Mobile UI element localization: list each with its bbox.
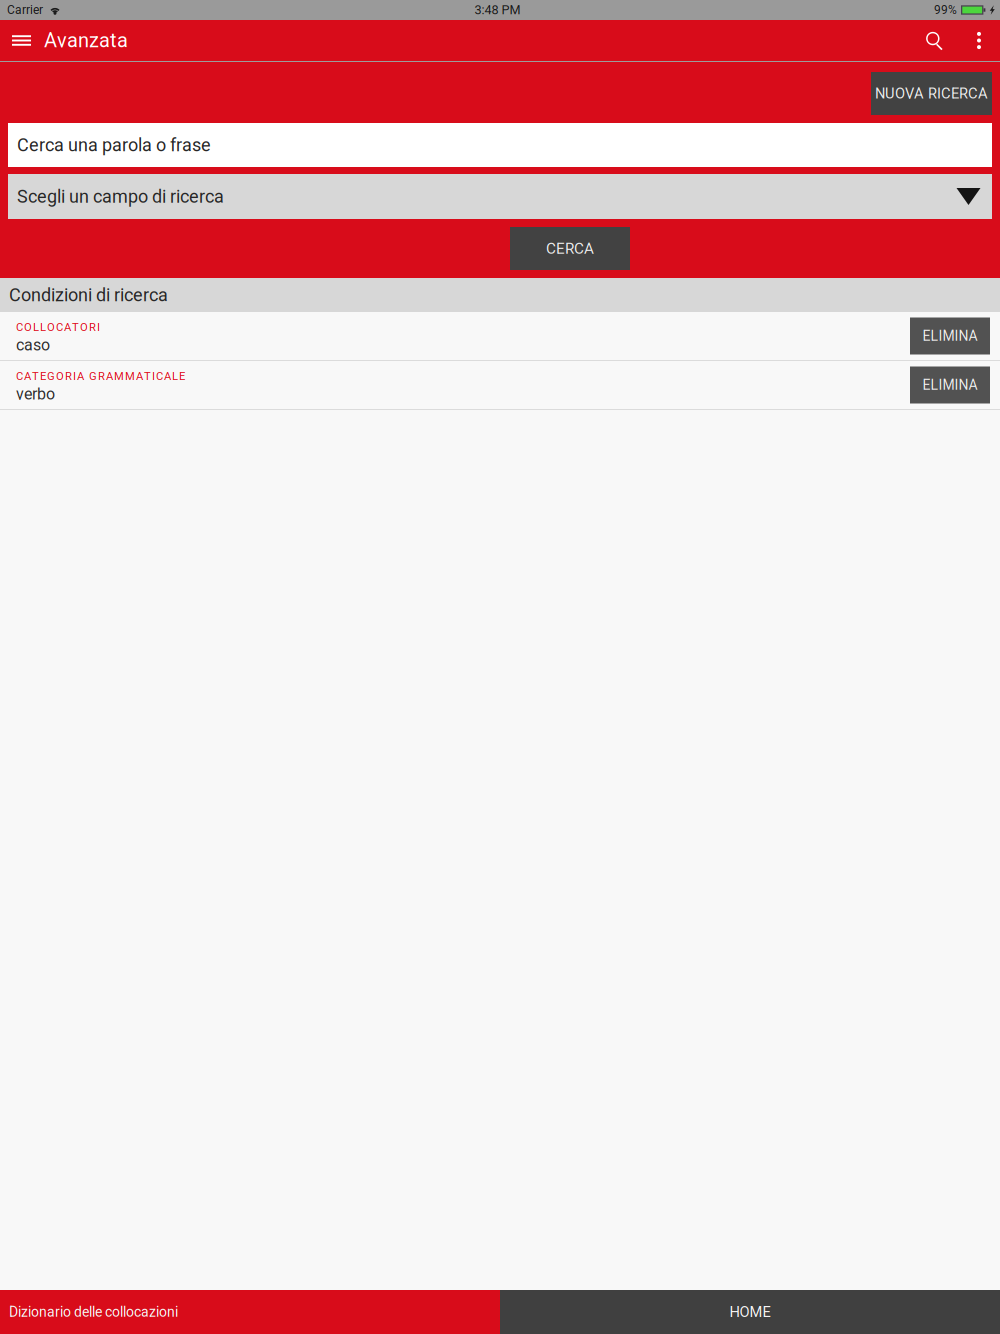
button[interactable]: HOME <box>500 1290 1000 1334</box>
staticText: verbo <box>16 385 55 403</box>
staticText: caso <box>16 336 50 354</box>
staticText: 99% <box>934 3 957 17</box>
button[interactable]: CERCA <box>510 227 630 270</box>
staticText: 3:48 PM <box>474 3 520 17</box>
button[interactable]: Menu <box>0 35 44 46</box>
button[interactable]: Altre opzioni <box>964 32 1000 49</box>
button[interactable]: NUOVA RICERCA <box>871 72 992 115</box>
staticText: ELIMINA <box>922 377 977 393</box>
staticText: NUOVA RICERCA <box>875 85 988 102</box>
staticText: Condizioni di ricerca <box>9 284 168 306</box>
staticText: HOME <box>729 1303 770 1321</box>
button[interactable]: Dizionario delle collocazioni <box>0 1290 500 1334</box>
staticText: Avanzata <box>44 29 128 52</box>
staticText: Carrier <box>7 3 43 17</box>
staticText: CERCA <box>546 240 594 257</box>
button[interactable]: ELIMINA <box>910 366 990 403</box>
button[interactable]: Cerca <box>913 31 964 50</box>
staticText: Cerca una parola o frase <box>17 134 211 156</box>
staticText: ELIMINA <box>922 328 977 344</box>
staticText: C O L L O C A T O R I <box>16 321 100 334</box>
staticText: C A T E G O R I A G R A M M A T I C A L … <box>16 370 185 383</box>
staticText: Dizionario delle collocazioni <box>9 1304 178 1320</box>
button[interactable]: ELIMINA <box>910 317 990 354</box>
staticText: Scegli un campo di ricerca <box>17 186 224 207</box>
